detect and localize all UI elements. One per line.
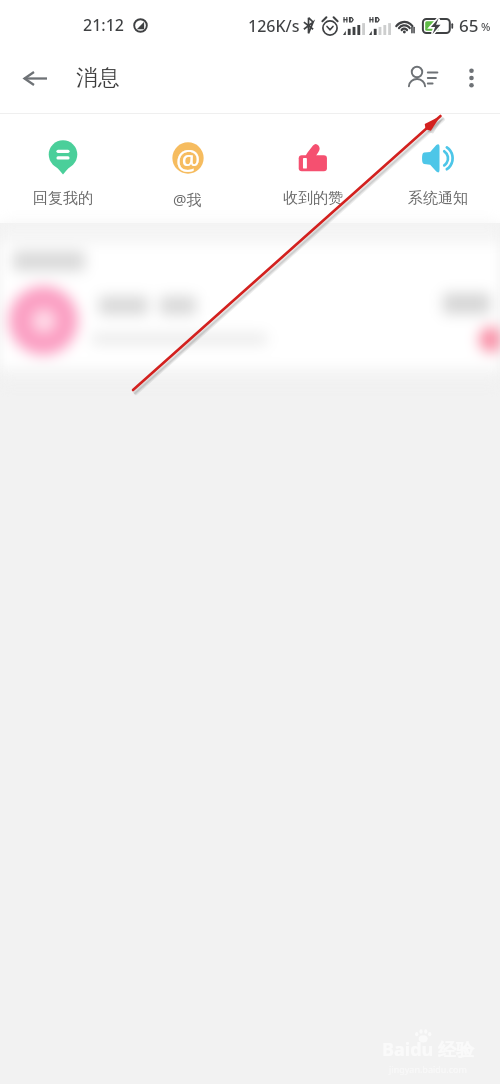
button[interactable]: 系统通知: [375, 114, 500, 223]
staticText: 回复我的: [33, 189, 93, 208]
staticText: 126K/s: [248, 15, 300, 37]
staticText: 65: [459, 14, 479, 37]
staticText: @我: [173, 189, 202, 209]
button[interactable]: 收到的赞: [250, 114, 375, 223]
staticText: Baidu 经验: [382, 1037, 474, 1062]
button[interactable]: Back: [12, 55, 58, 101]
button[interactable]: Contacts: [397, 52, 449, 104]
button[interactable]: Message conversation: [0, 279, 500, 369]
button[interactable]: 回复我的: [0, 114, 125, 223]
staticText: %: [481, 19, 491, 34]
staticText: 收到的赞: [283, 189, 343, 208]
staticText: 系统通知: [408, 189, 468, 208]
staticText: 消息: [76, 64, 120, 92]
staticText: @: [176, 141, 201, 175]
staticText: 21:12: [83, 14, 124, 36]
button[interactable]: More options: [449, 56, 493, 100]
button[interactable]: @: [125, 114, 250, 223]
